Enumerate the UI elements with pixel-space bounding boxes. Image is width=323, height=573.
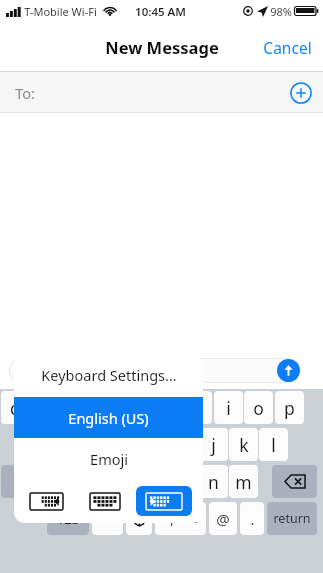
staticText: y [163,396,172,420]
staticText: Emoji [90,449,128,469]
button[interactable]: English (US) [14,397,203,438]
button[interactable]: v [138,465,167,498]
staticText: k [239,433,249,457]
staticText: v [148,470,157,494]
button[interactable]: z [47,465,76,498]
staticText: English (US) [68,408,149,428]
staticText: a [26,433,36,457]
button[interactable]: o [244,391,273,424]
button[interactable]: e [62,391,91,424]
button[interactable]: x [77,465,106,498]
button[interactable]: Split keyboard right [136,486,192,516]
button[interactable]: Backspace [272,465,317,498]
staticText: d [86,433,97,457]
button[interactable]: j [199,428,228,461]
staticText: s [57,433,66,457]
button[interactable]: l [259,428,288,461]
button[interactable]: c [108,465,137,498]
button[interactable]: Split keyboard left [25,488,67,514]
button[interactable]: Switch keyboard [92,502,123,535]
staticText: j [211,433,216,457]
staticText: f [118,433,125,457]
button[interactable]: r [92,391,121,424]
button[interactable]: Full keyboard [85,488,125,514]
button[interactable]: Send [277,359,300,382]
staticText: w [39,396,53,420]
staticText: To: [15,83,35,103]
button[interactable]: k [229,428,258,461]
button[interactable]: h [168,428,197,461]
staticText: @ [216,509,230,529]
button[interactable]: 123 [47,502,89,535]
staticText: 10:45 AM [135,4,186,20]
staticText: c [118,470,127,494]
button[interactable]: Keyboard Settings... [14,352,203,397]
button[interactable]: t [123,391,152,424]
staticText: e [72,396,82,420]
staticText: r [103,396,111,420]
staticText: z [57,470,66,494]
staticText: . [250,509,255,529]
button[interactable]: m [229,465,258,498]
staticText: t [134,396,141,420]
button[interactable]: n [199,465,228,498]
staticText: o [253,396,264,420]
button[interactable]: b [169,465,198,498]
staticText: return [273,510,311,527]
button[interactable]: Dictate [126,502,152,535]
staticText: l [271,433,276,457]
staticText: i [226,396,231,420]
button[interactable]: @ [209,502,237,535]
staticText: 123 [56,510,80,528]
button[interactable]: a [16,428,45,461]
button[interactable]: d [77,428,106,461]
staticText: q [10,396,21,420]
button[interactable]: space [155,502,206,535]
button[interactable]: Add recipient [290,82,312,104]
button[interactable]: s [47,428,76,461]
staticText: u [192,396,203,420]
staticText: h [177,433,188,457]
staticText: T-Mobile Wi-Fi [24,4,97,19]
staticText: m [235,470,252,494]
button[interactable]: i [214,391,243,424]
staticText: New Message [105,36,219,58]
staticText: Keyboard Settings... [41,365,177,385]
staticText: p [284,396,295,420]
button[interactable]: Emoji [14,438,203,479]
button[interactable]: g [138,428,167,461]
button[interactable]: . [240,502,264,535]
button[interactable]: Shift [1,465,41,498]
button[interactable] [9,358,297,383]
button[interactable]: y [153,391,182,424]
button[interactable]: To: [0,72,323,113]
button[interactable]: Cancel [252,28,323,67]
staticText: space [164,510,198,527]
button[interactable]: p [275,391,304,424]
staticText: g [147,433,158,457]
button[interactable]: f [107,428,136,461]
button[interactable]: q [1,391,30,424]
staticText: x [87,470,97,494]
staticText: Cancel [263,37,312,58]
button[interactable]: w [31,391,60,424]
button[interactable]: u [183,391,212,424]
staticText: b [178,470,189,494]
button[interactable]: return [267,502,317,535]
staticText: n [208,470,219,494]
staticText: 98% [270,4,292,19]
